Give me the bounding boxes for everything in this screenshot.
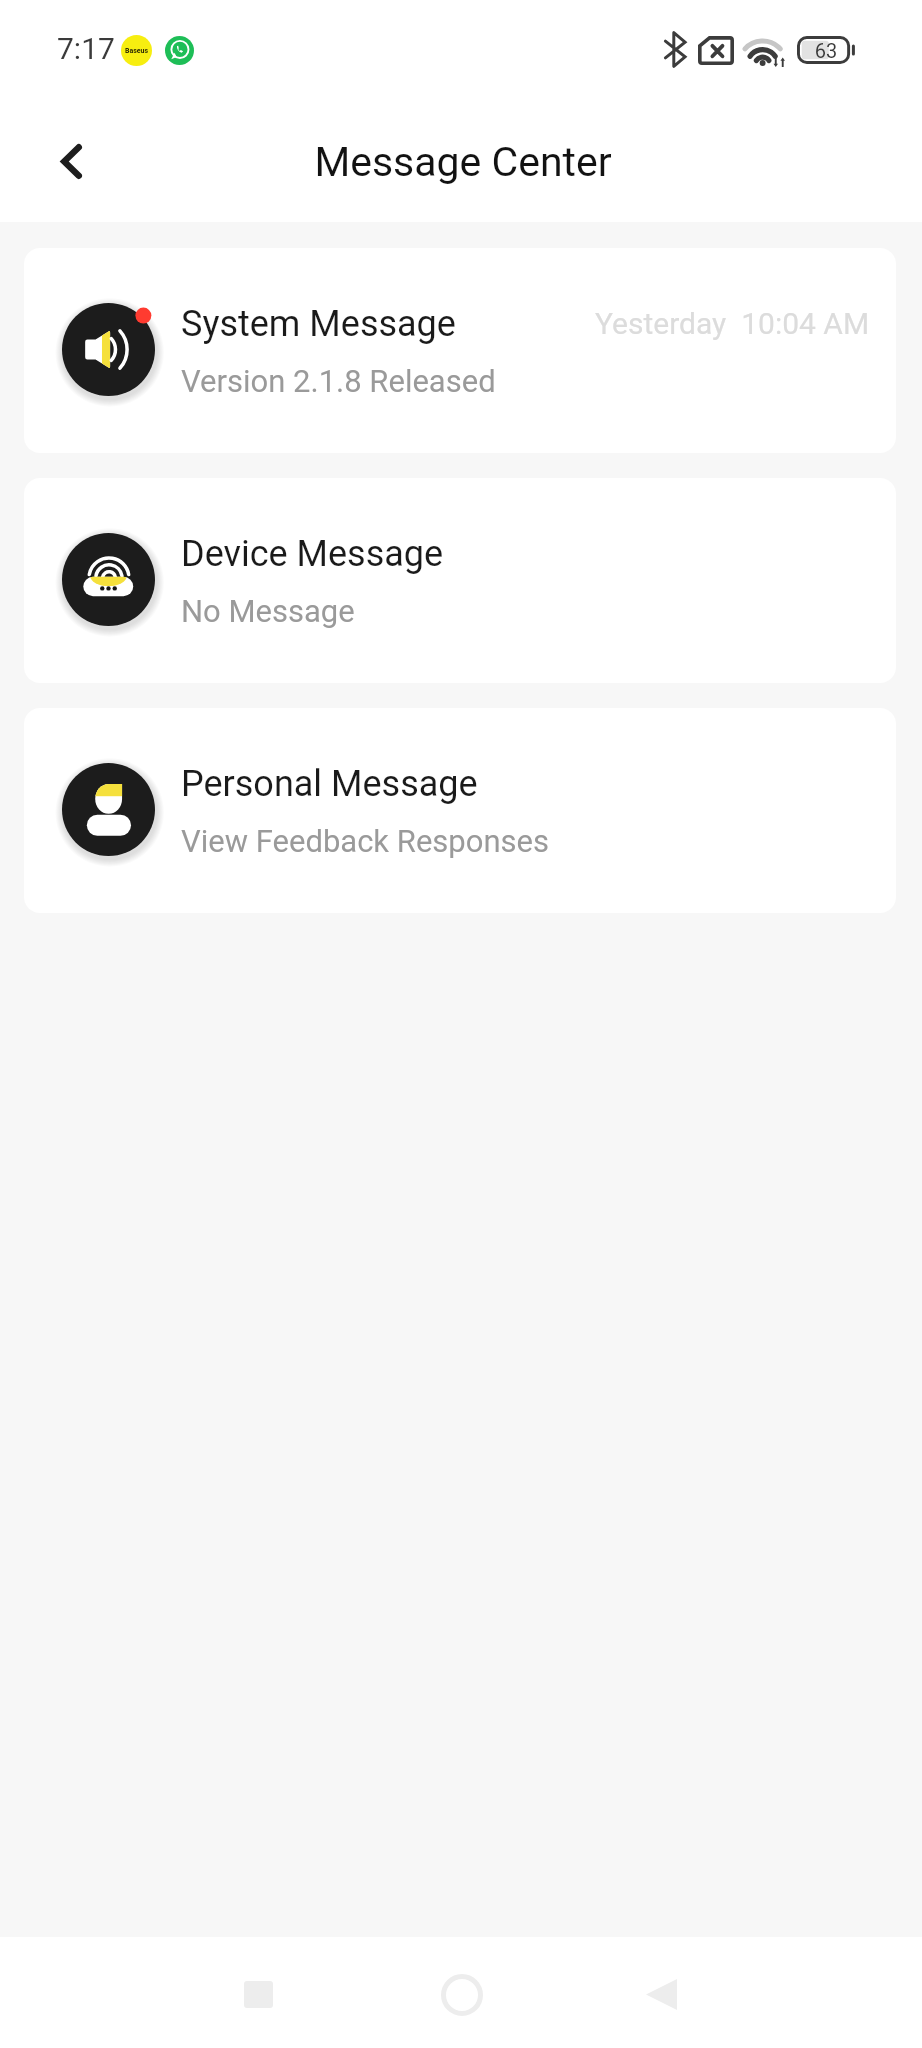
button[interactable]: Back bbox=[617, 1951, 706, 2038]
button[interactable]: System Message bbox=[24, 248, 896, 453]
staticText: Device Message bbox=[181, 533, 444, 575]
button[interactable]: Recent apps bbox=[214, 1951, 303, 2038]
staticText: 7:17 bbox=[57, 31, 115, 66]
staticText: Baseus bbox=[125, 47, 149, 55]
staticText: No Message bbox=[181, 593, 355, 629]
button[interactable]: Device Message bbox=[24, 478, 896, 683]
staticText: Yesterday 10:04 AM bbox=[595, 306, 870, 341]
staticText: Version 2.1.8 Released bbox=[181, 363, 496, 399]
button[interactable]: Personal Message bbox=[24, 708, 896, 913]
staticText: Personal Message bbox=[181, 763, 478, 805]
staticText: 63 bbox=[806, 39, 846, 62]
staticText: Message Center bbox=[314, 138, 612, 186]
button[interactable]: Back bbox=[27, 117, 115, 205]
staticText: System Message bbox=[181, 303, 456, 345]
staticText: View Feedback Responses bbox=[181, 823, 549, 859]
button[interactable]: Home bbox=[417, 1951, 506, 2038]
